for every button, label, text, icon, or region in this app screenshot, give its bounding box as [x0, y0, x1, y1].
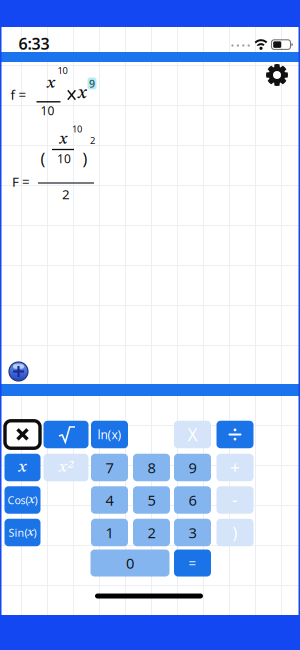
staticText: x²: [59, 459, 73, 475]
staticText: F =: [12, 173, 30, 190]
staticText: Cos(: [7, 493, 28, 507]
staticText: x: [78, 84, 86, 102]
button[interactable]: ln(x): [91, 421, 128, 448]
staticText: x: [47, 75, 55, 92]
staticText: ): [33, 525, 36, 540]
staticText: 10: [40, 102, 54, 118]
staticText: 5: [147, 490, 155, 510]
button[interactable]: 0: [90, 549, 169, 576]
staticText: 1: [105, 523, 113, 542]
staticText: 10: [72, 123, 82, 135]
staticText: x: [18, 459, 26, 476]
staticText: 3: [188, 523, 196, 542]
staticText: x: [28, 494, 34, 506]
button[interactable]: 5: [133, 486, 170, 514]
button[interactable]: Sin(: [4, 519, 40, 546]
staticText: ): [34, 493, 37, 507]
button[interactable]: 9: [174, 454, 211, 481]
staticText: 0: [126, 553, 134, 573]
button[interactable]: [216, 421, 253, 448]
button[interactable]: ): [216, 519, 253, 546]
staticText: ): [82, 148, 87, 169]
staticText: 7: [105, 458, 113, 477]
staticText: +: [230, 456, 240, 479]
staticText: Sin(: [8, 525, 27, 540]
staticText: x: [27, 526, 33, 539]
button[interactable]: 2: [133, 519, 170, 546]
staticText: f =: [10, 86, 26, 103]
staticText: (: [40, 148, 45, 169]
button[interactable]: +: [216, 454, 253, 481]
staticText: 8: [147, 458, 155, 477]
button[interactable]: -: [216, 486, 253, 514]
button[interactable]: 3: [174, 519, 211, 546]
button[interactable]: 8: [133, 454, 170, 481]
staticText: 9: [188, 458, 196, 477]
staticText: =: [188, 554, 196, 572]
button[interactable]: 4: [91, 486, 128, 514]
staticText: X: [187, 423, 197, 446]
button[interactable]: 6: [174, 486, 211, 514]
button[interactable]: Cos(: [4, 486, 40, 514]
staticText: 2: [62, 185, 70, 203]
button[interactable]: x²: [43, 454, 88, 481]
staticText: 4: [105, 490, 113, 510]
staticText: 10: [57, 150, 71, 166]
staticText: ln(x): [97, 426, 121, 442]
staticText: 6:33: [18, 33, 49, 54]
button[interactable]: x: [4, 454, 40, 481]
staticText: 2: [147, 523, 155, 542]
button[interactable]: X: [174, 421, 211, 448]
staticText: 10: [57, 64, 67, 77]
staticText: 9: [89, 76, 95, 91]
staticText: x: [59, 131, 67, 147]
staticText: 6: [188, 490, 196, 510]
button[interactable]: 7: [91, 454, 128, 481]
button[interactable]: =: [174, 549, 211, 576]
button[interactable]: Settings: [264, 62, 290, 88]
button[interactable]: 1: [91, 519, 128, 546]
button[interactable]: Delete: [5, 421, 40, 448]
staticText: -: [232, 488, 238, 511]
staticText: 2: [90, 134, 95, 147]
button[interactable]: Add: [7, 360, 29, 382]
button[interactable]: [43, 421, 88, 448]
staticText: ): [232, 522, 237, 543]
